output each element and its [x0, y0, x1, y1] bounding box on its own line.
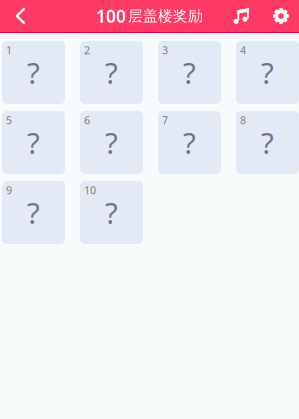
staticText: ?: [261, 123, 274, 162]
staticText: 1: [6, 43, 12, 57]
staticText: ?: [183, 123, 196, 162]
staticText: ?: [261, 53, 274, 92]
staticText: 3: [162, 43, 168, 57]
button[interactable]: ?: [236, 41, 299, 104]
staticText: ?: [27, 193, 40, 232]
button[interactable]: ?: [2, 111, 65, 174]
button[interactable]: ?: [2, 181, 65, 244]
staticText: 5: [6, 113, 12, 127]
staticText: ?: [105, 123, 118, 162]
button[interactable]: Back: [2, 0, 38, 32]
button[interactable]: ?: [80, 111, 143, 174]
staticText: 100: [96, 4, 126, 27]
staticText: 6: [84, 113, 90, 127]
button[interactable]: ?: [158, 41, 221, 104]
staticText: 7: [162, 113, 168, 127]
staticText: 10: [84, 183, 96, 197]
staticText: ?: [183, 53, 196, 92]
staticText: 层盖楼奖励: [128, 7, 203, 25]
staticText: ?: [27, 53, 40, 92]
staticText: ?: [105, 53, 118, 92]
button[interactable]: Music: [226, 0, 256, 32]
button[interactable]: ?: [2, 41, 65, 104]
button[interactable]: ?: [80, 181, 143, 244]
staticText: 9: [6, 183, 12, 197]
staticText: ?: [105, 193, 118, 232]
staticText: 2: [84, 43, 90, 57]
staticText: 4: [240, 43, 246, 57]
button[interactable]: ?: [80, 41, 143, 104]
staticText: 8: [240, 113, 246, 127]
staticText: ?: [27, 123, 40, 162]
button[interactable]: ?: [158, 111, 221, 174]
button[interactable]: ?: [236, 111, 299, 174]
button[interactable]: Settings: [266, 0, 296, 32]
